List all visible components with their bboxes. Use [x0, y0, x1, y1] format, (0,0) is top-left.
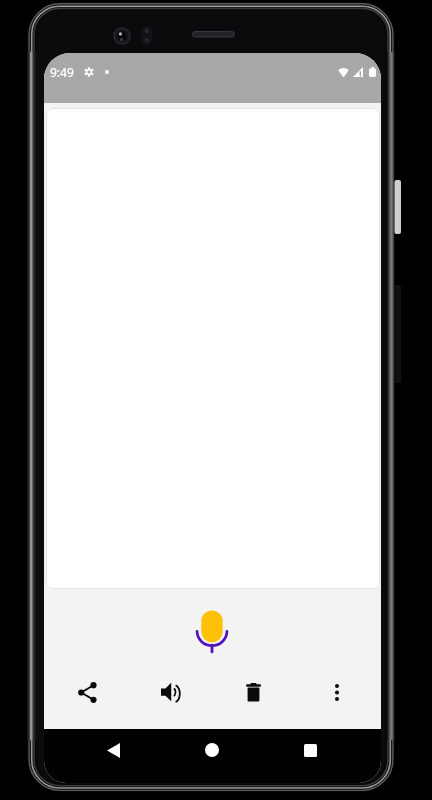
button[interactable]: Volume — [148, 670, 192, 714]
button[interactable]: Recent apps — [290, 730, 330, 770]
button[interactable]: Share — [65, 670, 109, 714]
button[interactable]: Home — [192, 730, 232, 770]
button[interactable]: Delete — [231, 670, 275, 714]
staticText: 9:49 — [50, 64, 74, 80]
button[interactable]: More options — [315, 670, 359, 714]
button[interactable]: Back — [93, 730, 133, 770]
button[interactable]: Record — [186, 605, 238, 657]
